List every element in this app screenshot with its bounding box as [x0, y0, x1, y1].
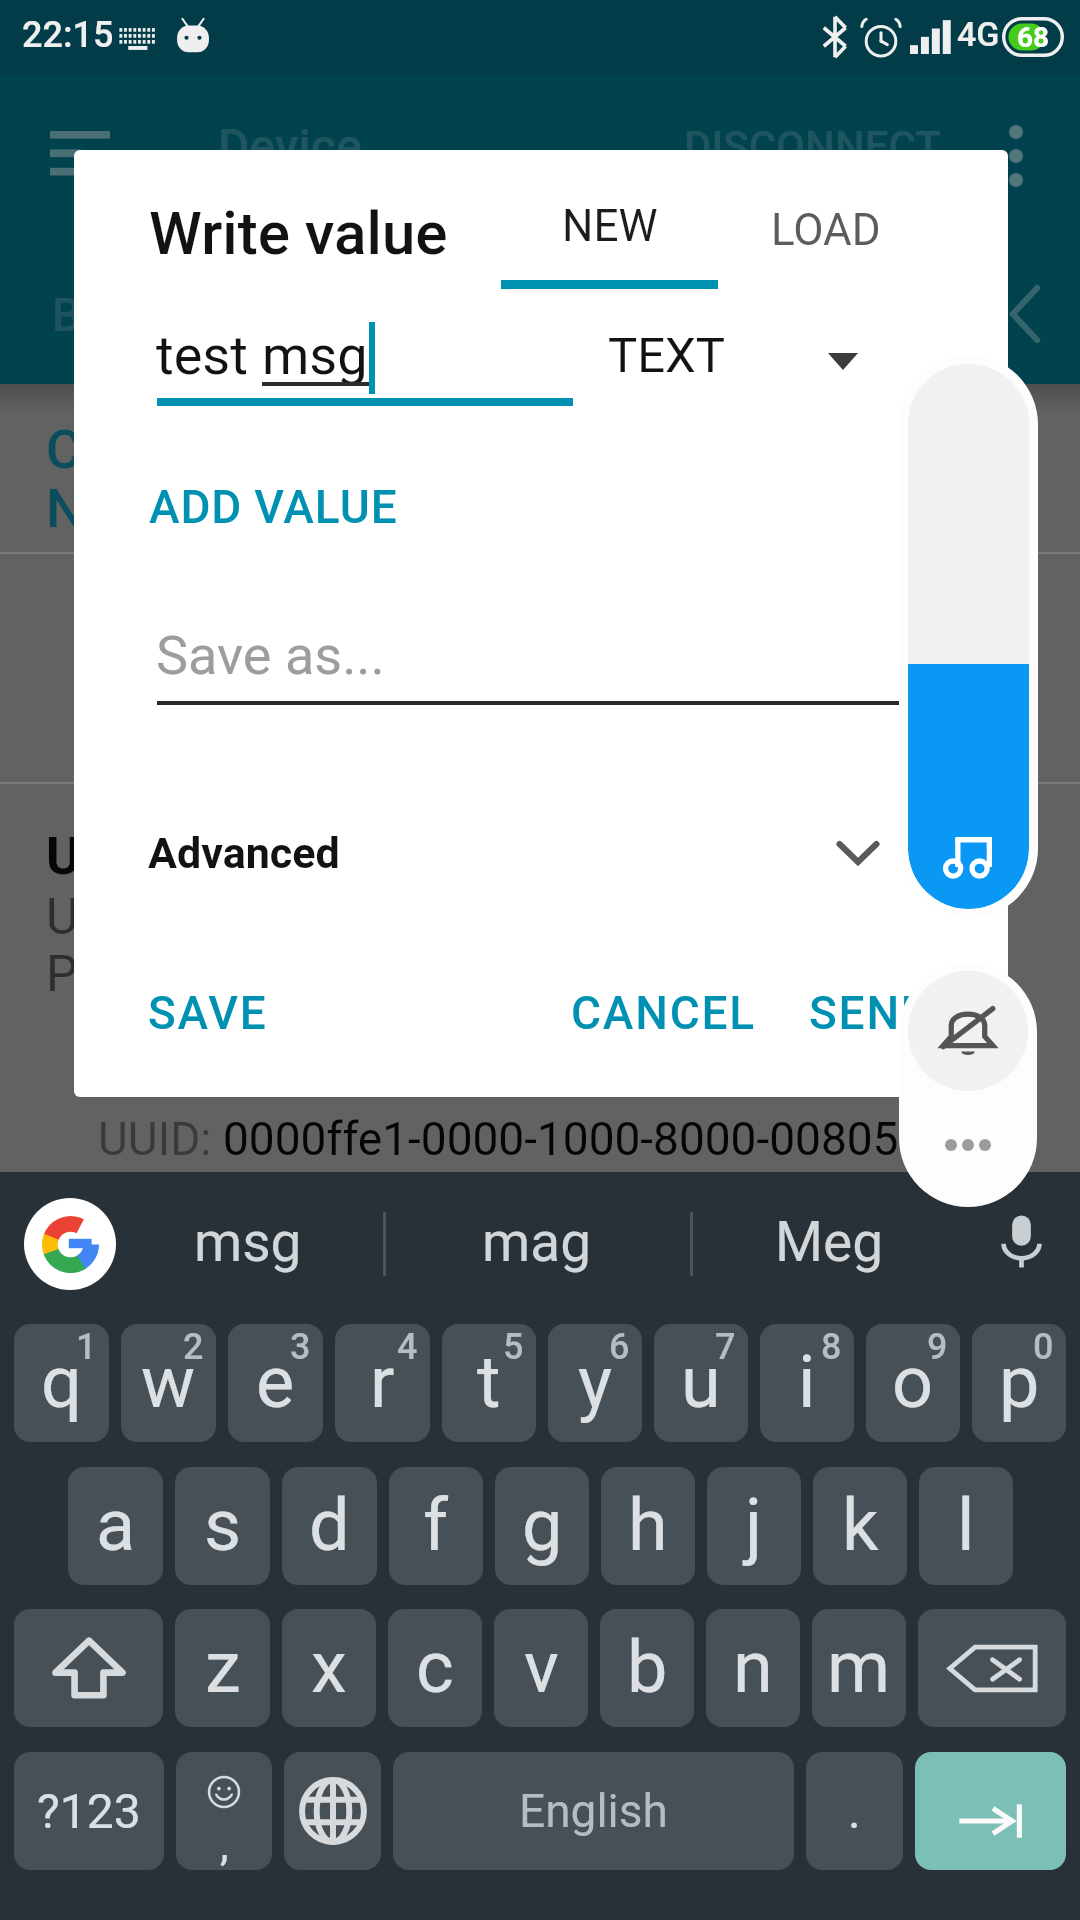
- staticText: 6: [609, 1326, 630, 1368]
- button[interactable]: k: [813, 1467, 907, 1585]
- button[interactable]: More options: [972, 110, 1060, 202]
- button[interactable]: h: [601, 1467, 695, 1585]
- button[interactable]: t: [442, 1324, 536, 1442]
- button[interactable]: Change language: [284, 1752, 381, 1870]
- staticText: y: [578, 1340, 613, 1424]
- button[interactable]: Silent mode: [908, 971, 1028, 1091]
- staticText: 4G: [957, 14, 1000, 54]
- staticText: j: [745, 1483, 763, 1567]
- button[interactable]: msg: [98, 1186, 398, 1298]
- staticText: NEW: [562, 200, 658, 252]
- button[interactable]: NEW: [501, 178, 718, 289]
- staticText: 4: [397, 1326, 418, 1368]
- button[interactable]: s: [175, 1467, 270, 1585]
- button[interactable]: q: [14, 1324, 109, 1442]
- button[interactable]: x: [282, 1609, 376, 1727]
- staticText: w: [141, 1340, 196, 1424]
- button[interactable]: g: [495, 1467, 589, 1585]
- staticText: ,: [220, 1819, 229, 1870]
- button[interactable]: Shift: [14, 1609, 163, 1727]
- staticText: b: [627, 1625, 668, 1709]
- button[interactable]: LOAD: [715, 182, 937, 282]
- staticText: ?123: [37, 1783, 141, 1839]
- staticText: f: [423, 1483, 449, 1567]
- button[interactable]: y: [548, 1324, 642, 1442]
- button[interactable]: Media volume: [908, 364, 1029, 909]
- staticText: 2: [183, 1326, 204, 1368]
- button[interactable]: ?123: [14, 1752, 164, 1870]
- button[interactable]: Voice input: [981, 1198, 1061, 1284]
- button[interactable]: w: [121, 1324, 216, 1442]
- staticText: d: [309, 1483, 350, 1567]
- button[interactable]: u: [654, 1324, 748, 1442]
- button[interactable]: DISCONNECT: [664, 108, 954, 200]
- staticText: English: [519, 1784, 668, 1838]
- button[interactable]: SAVE: [130, 970, 286, 1056]
- staticText: t: [477, 1340, 501, 1424]
- staticText: Device: [218, 118, 362, 174]
- staticText: 9: [927, 1326, 948, 1368]
- button[interactable]: m: [812, 1609, 906, 1727]
- staticText: CANCEL: [571, 986, 757, 1040]
- staticText: .: [848, 1783, 861, 1839]
- button[interactable]: d: [282, 1467, 377, 1585]
- staticText: SAVE: [148, 986, 268, 1040]
- staticText: 68: [1017, 21, 1050, 54]
- staticText: U: [46, 826, 81, 887]
- staticText: msg: [194, 1210, 302, 1274]
- staticText: SEND: [809, 986, 933, 1040]
- staticText: v: [524, 1625, 559, 1709]
- button[interactable]: More: [929, 1121, 1007, 1169]
- button[interactable]: i: [760, 1324, 854, 1442]
- staticText: r: [370, 1340, 395, 1424]
- staticText: Write value: [149, 198, 448, 268]
- button[interactable]: ADD VALUE: [131, 464, 416, 550]
- button[interactable]: TEXT: [594, 316, 954, 394]
- staticText: 0000ffe1-0000-1000-8000-00805f9b: [223, 1112, 967, 1166]
- staticText: C: [46, 418, 82, 481]
- staticText: DISCONNECT: [684, 122, 941, 171]
- button[interactable]: e: [228, 1324, 323, 1442]
- button[interactable]: Open navigation drawer: [28, 110, 132, 198]
- staticText: Meg: [775, 1210, 884, 1274]
- button[interactable]: Emoji: [176, 1752, 272, 1870]
- staticText: Save as...: [156, 624, 385, 687]
- button[interactable]: b: [600, 1609, 694, 1727]
- button[interactable]: p: [972, 1324, 1066, 1442]
- staticText: l: [957, 1483, 975, 1567]
- staticText: TEXT: [608, 327, 726, 384]
- staticText: q: [41, 1340, 82, 1424]
- button[interactable]: Google: [24, 1198, 116, 1290]
- button[interactable]: r: [335, 1324, 430, 1442]
- button[interactable]: English: [393, 1752, 794, 1870]
- button[interactable]: z: [175, 1609, 270, 1727]
- staticText: 3: [290, 1326, 311, 1368]
- staticText: ADD VALUE: [149, 480, 398, 534]
- staticText: a: [96, 1483, 136, 1567]
- button[interactable]: SEND: [791, 970, 951, 1056]
- button[interactable]: n: [706, 1609, 800, 1727]
- staticText: s: [204, 1483, 242, 1567]
- staticText: U: [46, 888, 79, 947]
- button[interactable]: .: [806, 1752, 903, 1870]
- staticText: 8: [821, 1326, 842, 1368]
- button[interactable]: v: [494, 1609, 588, 1727]
- staticText: e: [256, 1340, 295, 1424]
- button[interactable]: j: [707, 1467, 801, 1585]
- button[interactable]: CANCEL: [553, 970, 775, 1056]
- button[interactable]: c: [388, 1609, 482, 1727]
- button[interactable]: Backspace: [918, 1609, 1066, 1727]
- button[interactable]: l: [919, 1467, 1013, 1585]
- button[interactable]: mag: [410, 1186, 664, 1298]
- button[interactable]: a: [68, 1467, 163, 1585]
- staticText: z: [205, 1625, 241, 1709]
- button[interactable]: Meg: [704, 1186, 954, 1298]
- button[interactable]: Enter: [915, 1752, 1066, 1870]
- staticText: p: [999, 1340, 1040, 1424]
- staticText: h: [628, 1483, 668, 1567]
- button[interactable]: Advanced: [148, 813, 880, 893]
- staticText: mag: [482, 1210, 592, 1274]
- button[interactable]: o: [866, 1324, 960, 1442]
- button[interactable]: Back: [982, 270, 1068, 358]
- button[interactable]: f: [389, 1467, 483, 1585]
